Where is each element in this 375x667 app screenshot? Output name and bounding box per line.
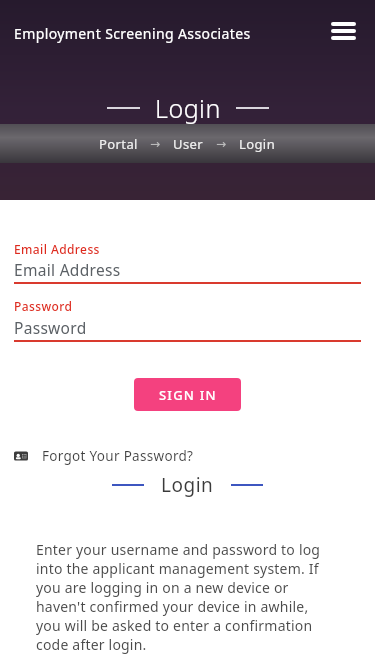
staticText: Forgot Your Password?	[42, 447, 194, 465]
button[interactable]	[331, 22, 356, 40]
staticText: Password	[14, 298, 73, 314]
staticText: Email Address	[14, 241, 100, 257]
staticText: Password	[14, 317, 87, 338]
button[interactable]: Forgot Your Password?	[14, 447, 194, 465]
staticText: →	[150, 137, 161, 151]
staticText: Enter your username and password to log …	[36, 540, 321, 654]
staticText: Employment Screening Associates	[14, 24, 251, 43]
staticText: Login	[155, 91, 221, 125]
staticText: Email Address	[14, 259, 121, 280]
button[interactable]: User	[173, 135, 204, 153]
staticText: Login	[161, 472, 214, 498]
staticText: SIGN IN	[159, 386, 217, 404]
button[interactable]: Login	[239, 135, 276, 153]
staticText: →	[216, 137, 227, 151]
button[interactable]: Portal	[99, 135, 138, 153]
button[interactable]: SIGN IN	[134, 378, 241, 411]
